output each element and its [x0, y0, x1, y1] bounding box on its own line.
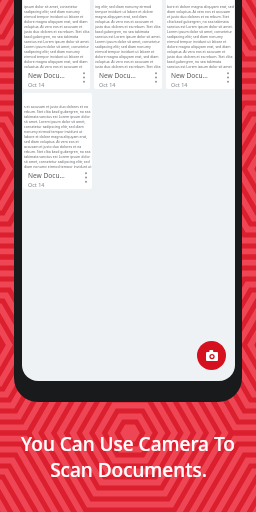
staticText: New Docu...: [171, 71, 208, 80]
staticText: New Docu...: [28, 71, 65, 80]
staticText: Oct 14: [99, 81, 116, 88]
staticText: New Docu...: [28, 171, 65, 180]
button[interactable]: s et accusam et justo duo dolores et ea …: [23, 93, 92, 189]
staticText: s et accusam et justo duo dolores et ea …: [24, 104, 92, 168]
button[interactable]: Scan document with camera: [197, 341, 226, 370]
staticText: Oct 14: [28, 181, 45, 188]
staticText: ipsum dolor sit amet, consetetur sadipsc…: [24, 4, 90, 68]
staticText: New Docu...: [99, 71, 136, 80]
button[interactable]: bore et dolore magna aliquyam erat, sed …: [166, 0, 234, 89]
staticText: ing elitr, sed diam nonumy eirmod tempor…: [95, 4, 162, 68]
staticText: Scan Documents.: [50, 457, 207, 483]
staticText: Oct 14: [28, 81, 45, 88]
staticText: Oct 14: [171, 81, 188, 88]
staticText: bore et dolore magna aliquyam erat, sed …: [167, 4, 234, 68]
staticText: You Can Use Camera To: [21, 431, 235, 457]
button[interactable]: ing elitr, sed diam nonumy eirmod tempor…: [94, 0, 162, 89]
button[interactable]: ipsum dolor sit amet, consetetur sadipsc…: [23, 0, 90, 89]
